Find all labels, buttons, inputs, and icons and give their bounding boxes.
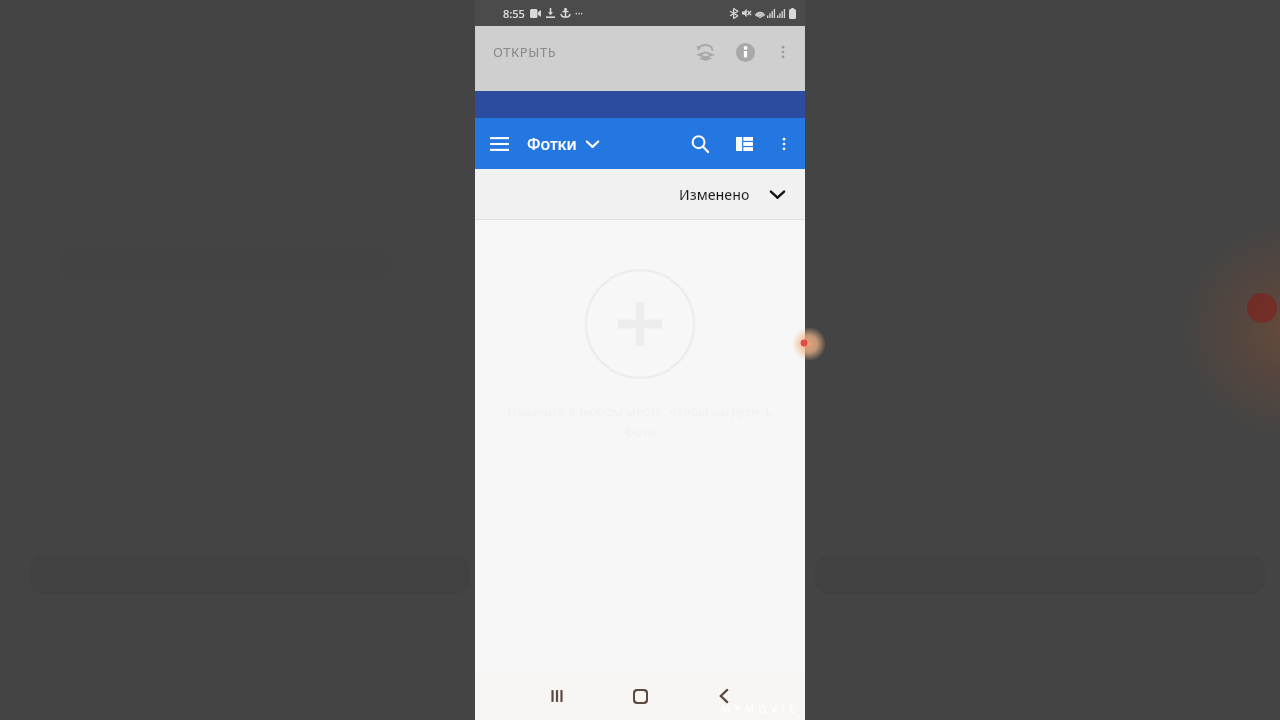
button[interactable]: Back (682, 672, 765, 720)
button[interactable]: Изменено (665, 175, 805, 214)
button[interactable]: Change view (722, 122, 766, 166)
button[interactable]: More options (766, 126, 802, 162)
button[interactable]: Info (725, 32, 765, 72)
staticText: 8:55 (503, 6, 525, 21)
button[interactable]: Create new (584, 268, 696, 380)
button[interactable]: More options (765, 34, 801, 70)
staticText: Изменено (679, 185, 750, 204)
button[interactable]: Фотки (523, 127, 603, 161)
button[interactable]: Home (599, 672, 682, 720)
staticText: M Y M O V I E (721, 702, 797, 716)
staticText: ОТКРЫТЬ (493, 43, 557, 61)
button[interactable]: ОТКРЫТЬ (475, 35, 575, 69)
staticText: Фотки (527, 133, 577, 155)
button[interactable]: Search (678, 122, 722, 166)
button[interactable]: Revert layers (685, 32, 725, 72)
staticText: ··· (575, 6, 584, 20)
button[interactable]: Recent apps (515, 672, 599, 720)
button[interactable]: Navigation menu (475, 120, 523, 168)
